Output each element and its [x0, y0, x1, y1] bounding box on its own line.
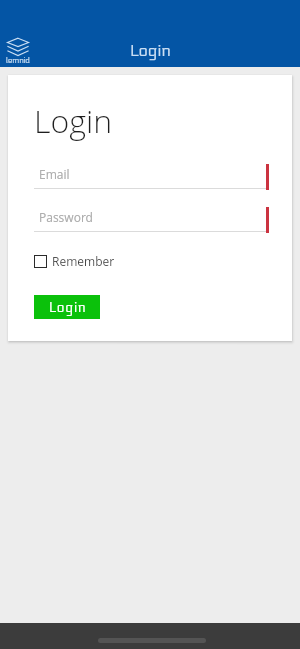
button[interactable]: Login: [34, 295, 100, 319]
staticText: Login: [34, 99, 113, 143]
button[interactable]: Remember: [34, 249, 115, 273]
button[interactable]: lemnid home: [5, 36, 31, 67]
staticText: Login: [130, 41, 171, 60]
button[interactable]: Password: [34, 209, 266, 235]
button[interactable]: Email: [34, 166, 266, 192]
staticText: Login: [49, 300, 87, 315]
staticText: lemnid: [6, 56, 30, 65]
staticText: Password: [39, 209, 93, 225]
staticText: Email: [39, 166, 70, 182]
staticText: Remember: [52, 253, 115, 269]
